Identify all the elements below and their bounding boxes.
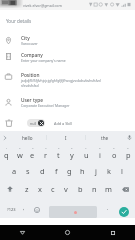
staticText: u <box>84 150 89 160</box>
button[interactable]: l <box>115 162 128 180</box>
staticText: Enter your company's name <box>21 58 66 63</box>
button[interactable]: , <box>18 201 29 218</box>
button[interactable] <box>0 95 135 109</box>
button[interactable]: Space <box>49 206 97 218</box>
button[interactable] <box>0 70 135 88</box>
staticText: g <box>67 166 72 176</box>
staticText: . <box>107 205 109 212</box>
button[interactable]: s <box>21 162 35 180</box>
button[interactable]: 4 <box>39 144 52 162</box>
button[interactable] <box>0 33 135 47</box>
staticText: b <box>78 184 83 194</box>
staticText: I <box>65 135 67 141</box>
button[interactable]: I <box>47 131 85 144</box>
button[interactable]: x <box>33 180 46 198</box>
button[interactable]: 6 <box>65 144 79 162</box>
button[interactable]: ?123 <box>1 201 21 218</box>
button[interactable]: Voice input <box>124 131 135 144</box>
staticText: Position <box>21 72 40 79</box>
staticText: 4 <box>45 146 47 149</box>
staticText: 5 <box>58 146 60 149</box>
staticText: d <box>40 166 45 176</box>
staticText: 9 <box>113 146 115 149</box>
staticText: 7 <box>85 146 87 149</box>
staticText: Company <box>21 52 43 59</box>
staticText: User type <box>21 97 43 104</box>
staticText: 0 <box>127 146 129 149</box>
button[interactable]: the <box>86 131 124 144</box>
staticText: ?123 <box>7 207 16 212</box>
staticText: Vancouver <box>21 41 38 46</box>
staticText: m <box>105 184 112 194</box>
staticText: k <box>107 166 111 176</box>
staticText: j <box>95 166 97 176</box>
staticText: 6 <box>71 146 73 149</box>
staticText: l <box>121 166 123 176</box>
staticText: n <box>92 184 97 194</box>
button[interactable]: Backspace <box>115 180 135 198</box>
staticText: 3 <box>32 146 34 149</box>
button[interactable]: . <box>102 201 113 218</box>
button[interactable]: 0 <box>121 144 135 162</box>
button[interactable]: Emoji <box>31 201 42 218</box>
button[interactable]: Home <box>45 225 90 240</box>
staticText: e <box>30 150 35 160</box>
button[interactable]: Delete skills <box>5 119 13 127</box>
button[interactable]: Back <box>0 225 45 240</box>
button[interactable]: k <box>102 162 115 180</box>
button[interactable]: n <box>87 180 101 198</box>
button[interactable]: hello <box>9 131 46 144</box>
staticText: f <box>55 166 58 176</box>
staticText: h <box>80 166 85 176</box>
button[interactable]: g <box>63 162 76 180</box>
button[interactable]: v <box>59 180 73 198</box>
button[interactable]: d <box>35 162 49 180</box>
button[interactable]: 7 <box>79 144 93 162</box>
button[interactable]: f <box>49 162 63 180</box>
button[interactable]: 9 <box>107 144 121 162</box>
button[interactable]: Add a Skill <box>54 119 73 127</box>
staticText: jsdjdjf5f5fjfvhjcjcjgfghfgfjfjfhsvgjvsvb… <box>21 78 101 83</box>
staticText: 1 <box>6 146 8 149</box>
button[interactable]: m <box>101 180 115 198</box>
button[interactable]: 8 <box>93 144 107 162</box>
staticText: Corporate Executive/ Manager <box>21 103 70 108</box>
button[interactable]: z <box>20 180 33 198</box>
staticText: w <box>17 150 23 160</box>
staticText: , <box>23 205 25 212</box>
staticText: t <box>57 150 60 160</box>
button[interactable]: j <box>89 162 102 180</box>
button[interactable]: Shift <box>0 180 20 198</box>
button[interactable]: c <box>46 180 59 198</box>
button[interactable] <box>0 50 135 64</box>
button[interactable]: 1 <box>0 144 13 162</box>
staticText: y <box>70 150 74 160</box>
button[interactable]: h <box>76 162 89 180</box>
button[interactable]: More suggestions <box>0 131 9 144</box>
staticText: the <box>101 135 109 141</box>
staticText: Add a Skill <box>54 121 73 126</box>
staticText: p <box>126 150 131 160</box>
staticText: q <box>4 150 9 160</box>
button[interactable]: 3 <box>26 144 39 162</box>
staticText: r <box>44 150 48 160</box>
button[interactable]: null <box>27 119 45 127</box>
staticText: v <box>64 184 68 194</box>
staticText: c <box>51 184 55 194</box>
staticText: 8 <box>99 146 101 149</box>
button[interactable]: 2 <box>13 144 26 162</box>
staticText: Your details <box>6 18 32 24</box>
staticText: a <box>12 166 17 176</box>
button[interactable]: 5 <box>52 144 65 162</box>
staticText: 2 <box>19 146 21 149</box>
staticText: i <box>99 150 101 160</box>
staticText: z <box>25 184 29 194</box>
button[interactable]: a <box>7 162 21 180</box>
button[interactable]: b <box>73 180 87 198</box>
staticText: City <box>21 35 30 42</box>
staticText: vivek.elvor@gmail.com <box>23 3 62 8</box>
staticText: x <box>38 184 42 194</box>
staticText: o <box>112 150 117 160</box>
button[interactable]: Enter <box>114 201 135 218</box>
button[interactable]: Recents <box>90 225 135 240</box>
